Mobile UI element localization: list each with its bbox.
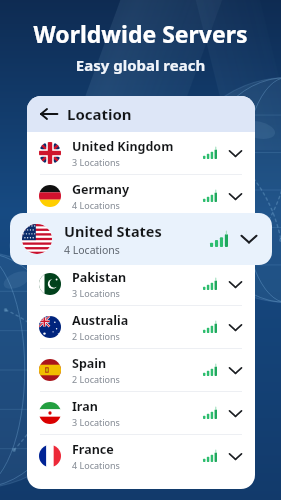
button[interactable]: Pakistan bbox=[27, 263, 255, 305]
button[interactable]: United Kingdom bbox=[27, 132, 255, 174]
button[interactable]: Germany bbox=[27, 175, 255, 217]
button[interactable]: Expand Spain bbox=[228, 363, 243, 378]
staticText: 4 Locations bbox=[64, 243, 120, 257]
staticText: Pakistan bbox=[72, 269, 127, 286]
button[interactable]: United States bbox=[10, 213, 272, 265]
staticText: Easy global reach bbox=[0, 55, 281, 75]
button[interactable]: France bbox=[27, 435, 255, 477]
staticText: 2 Locations bbox=[72, 373, 120, 385]
button[interactable]: Expand France bbox=[228, 449, 243, 464]
staticText: 4 Locations bbox=[72, 199, 120, 211]
staticText: United States bbox=[64, 221, 162, 241]
staticText: Spain bbox=[72, 355, 107, 372]
staticText: Worldwide Servers bbox=[0, 18, 281, 49]
button[interactable]: Expand Pakistan bbox=[228, 277, 243, 292]
button[interactable]: Iran bbox=[27, 392, 255, 434]
staticText: France bbox=[72, 441, 114, 458]
staticText: United Kingdom bbox=[72, 138, 174, 155]
button[interactable]: Australia bbox=[27, 306, 255, 348]
staticText: Location bbox=[67, 104, 132, 124]
staticText: Australia bbox=[72, 312, 129, 329]
staticText: Iran bbox=[72, 398, 98, 415]
button[interactable]: Back bbox=[39, 104, 59, 124]
staticText: 3 Locations bbox=[72, 156, 120, 168]
button[interactable]: Expand United Kingdom bbox=[228, 146, 243, 161]
staticText: 2 Locations bbox=[72, 330, 120, 342]
staticText: Germany bbox=[72, 181, 130, 198]
button[interactable]: Back bbox=[27, 96, 255, 132]
button[interactable]: Expand Germany bbox=[228, 189, 243, 204]
staticText: 3 Locations bbox=[72, 416, 120, 428]
staticText: 3 Locations bbox=[72, 287, 120, 299]
button[interactable]: Expand United States bbox=[240, 230, 258, 248]
button[interactable]: Spain bbox=[27, 349, 255, 391]
button[interactable]: Expand Australia bbox=[228, 320, 243, 335]
button[interactable]: Expand Iran bbox=[228, 406, 243, 421]
staticText: 4 Locations bbox=[72, 459, 120, 471]
